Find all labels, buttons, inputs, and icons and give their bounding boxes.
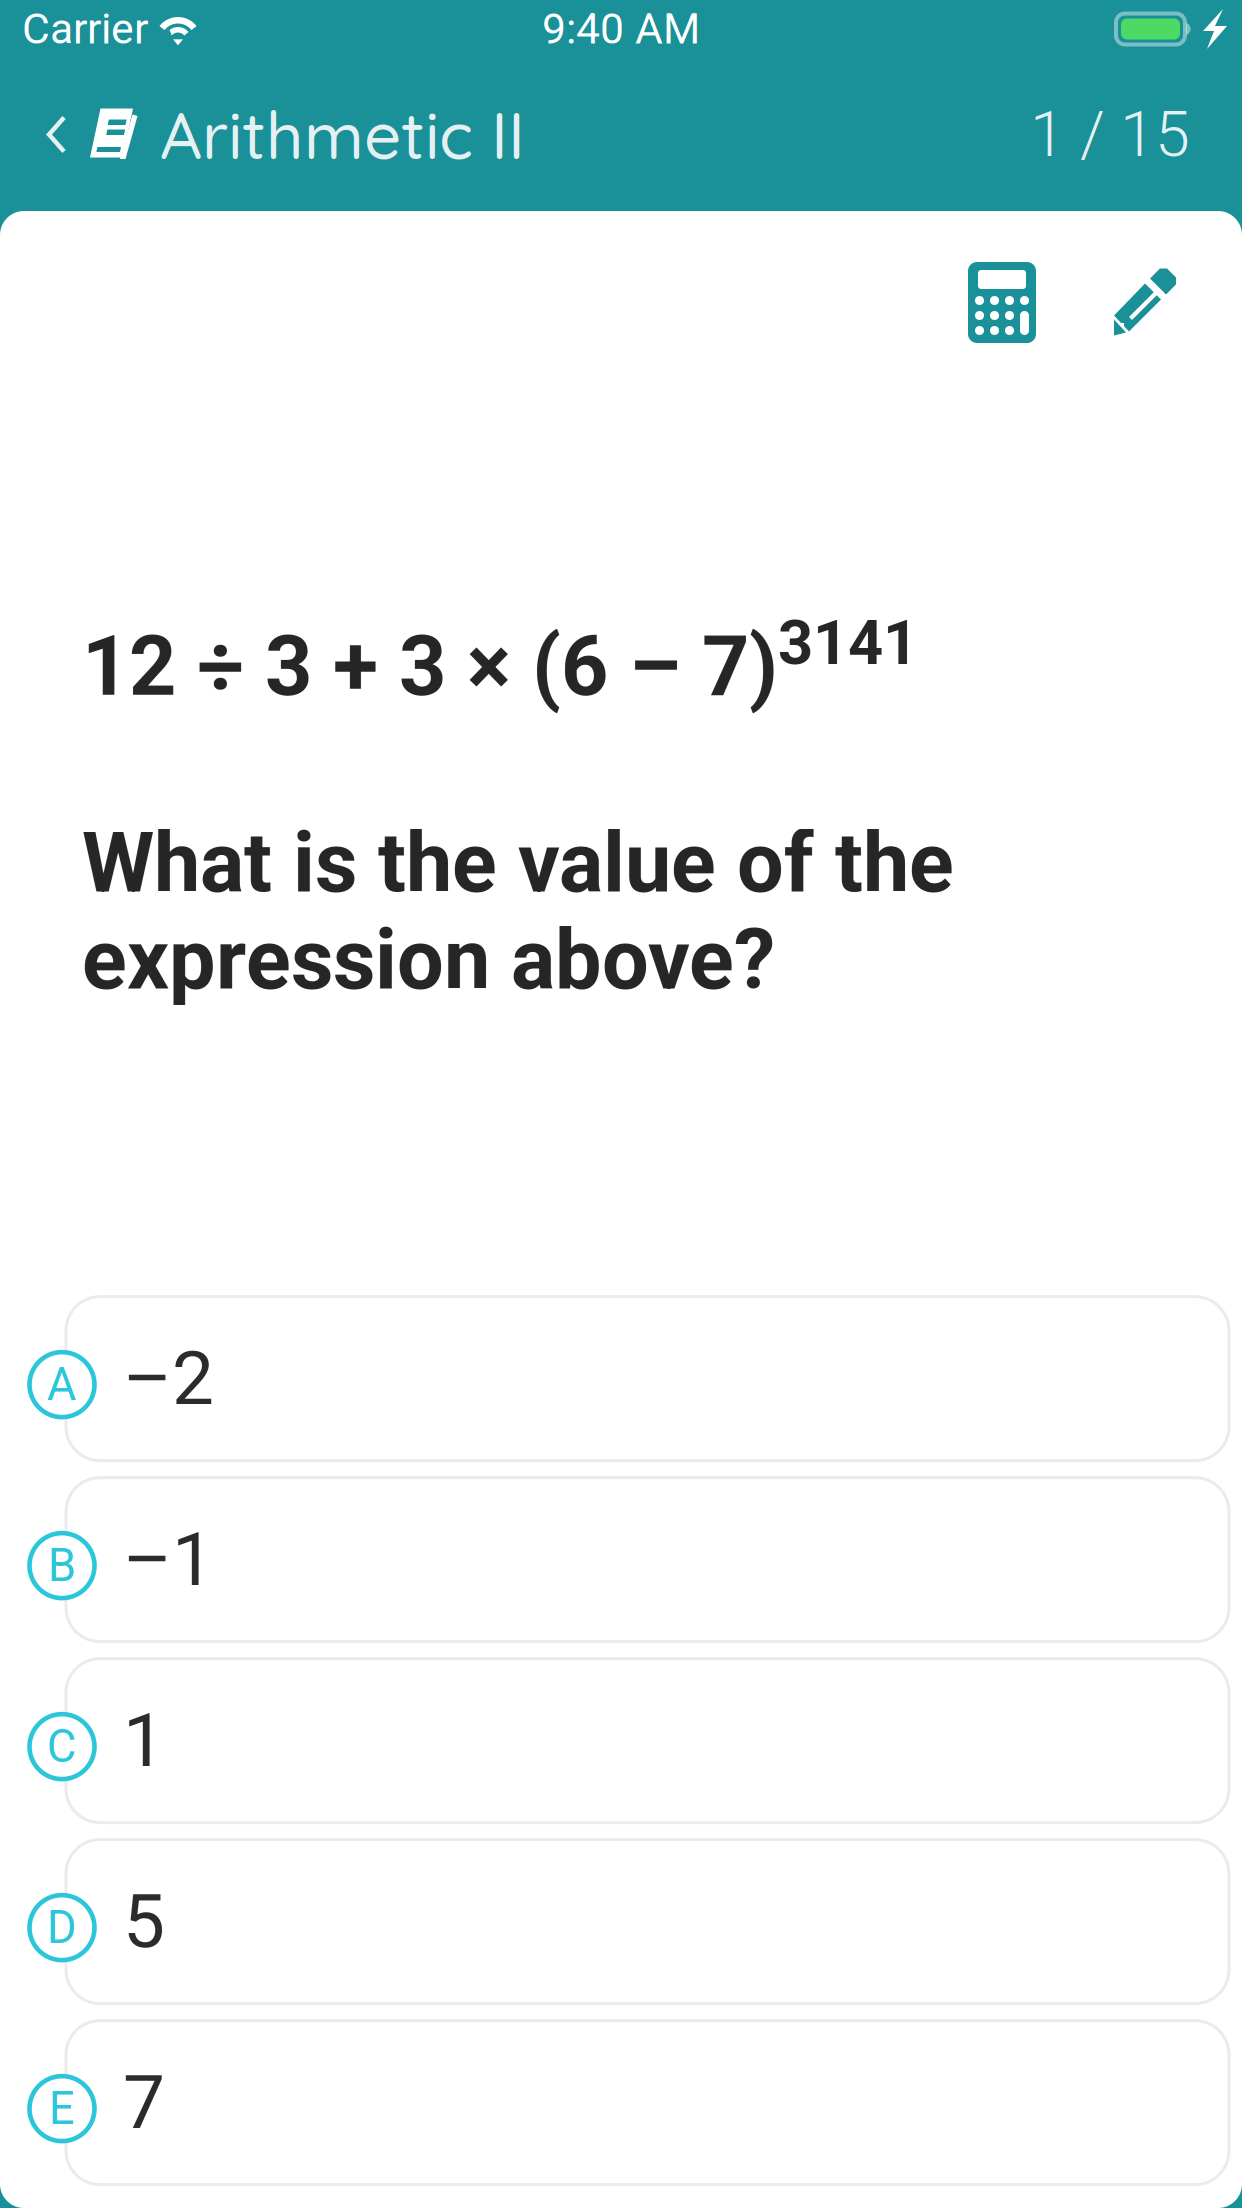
staticText: D	[47, 1901, 77, 1954]
button[interactable]: 1	[0, 1659, 1242, 1823]
button[interactable]: 7	[0, 2021, 1242, 2185]
staticText: Arithmetic II	[160, 94, 525, 175]
staticText: 1 / 15	[1030, 98, 1190, 171]
button[interactable]: –1	[0, 1478, 1242, 1642]
staticText: –2	[123, 1335, 214, 1422]
staticText: 7	[123, 2059, 165, 2146]
staticText: C	[47, 1720, 77, 1773]
staticText: What is the value of the expression abov…	[82, 815, 954, 1009]
staticText: B	[48, 1539, 76, 1592]
button[interactable]: Scratchpad	[1114, 267, 1178, 337]
staticText: 3141	[778, 607, 918, 679]
button[interactable]: Back	[47, 96, 142, 172]
staticText: 1	[123, 1697, 165, 1784]
button[interactable]: Calculator	[966, 263, 1038, 342]
staticText: 9:40 AM	[542, 4, 700, 54]
staticText: –1	[123, 1516, 214, 1603]
staticText: A	[47, 1358, 77, 1411]
staticText: Carrier	[22, 4, 148, 54]
staticText: E	[49, 2082, 75, 2135]
staticText: 5	[123, 1878, 165, 1965]
button[interactable]: 5	[0, 1840, 1242, 2004]
staticText: 12 ÷ 3 + 3 × (6 – 7)	[82, 618, 778, 715]
button[interactable]: –2	[0, 1297, 1242, 1461]
